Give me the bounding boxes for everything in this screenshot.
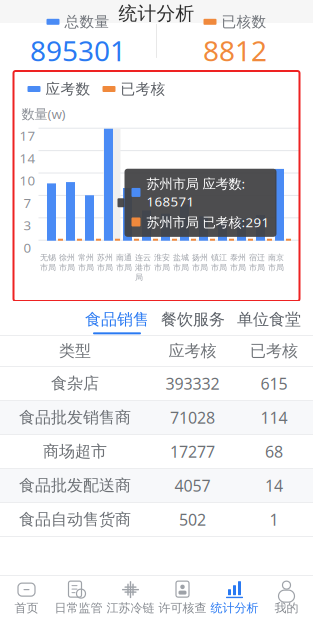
staticText: 商场超市 <box>43 442 107 461</box>
staticText: 苏州市局 已考核:291 <box>146 213 269 231</box>
staticText: 17 <box>19 127 35 144</box>
staticText: 镇江市局 <box>211 253 227 272</box>
staticText: 连云港市局 <box>135 253 151 282</box>
button[interactable]: 食品销售 <box>79 304 155 336</box>
staticText: 4057 <box>174 475 210 496</box>
button[interactable]: 江苏冷链 <box>104 577 156 619</box>
staticText: 8812 <box>203 32 267 69</box>
staticText: 泰州市局 <box>230 253 246 272</box>
staticText: 盐城市局 <box>173 253 189 272</box>
staticText: 114 <box>260 407 287 428</box>
staticText: 7 <box>23 194 31 212</box>
staticText: 常州市局 <box>78 253 94 272</box>
staticText: 393332 <box>165 373 219 394</box>
staticText: 14 <box>265 475 283 496</box>
staticText: 食品自动售货商 <box>19 510 131 529</box>
staticText: 总数量 <box>64 13 109 31</box>
staticText: 502 <box>179 509 206 530</box>
staticText: 淮安市局 <box>154 253 170 272</box>
staticText: 苏州市局 <box>97 253 113 272</box>
staticText: 扬州市局 <box>192 253 208 272</box>
button[interactable]: 我的 <box>260 577 312 619</box>
staticText: 895301 <box>30 32 126 69</box>
staticText: 南京市局 <box>268 253 284 272</box>
staticText: 0 <box>23 239 31 256</box>
staticText: 已考核 <box>120 80 165 98</box>
staticText: 南通市局 <box>116 253 132 272</box>
staticText: 应考数 <box>45 80 90 98</box>
staticText: 1 <box>269 509 278 530</box>
staticText: 徐州市局 <box>59 253 75 272</box>
button[interactable]: 餐饮服务 <box>155 304 231 336</box>
staticText: 食品批发销售商 <box>19 408 131 427</box>
staticText: 我的 <box>274 601 298 615</box>
staticText: 17277 <box>170 441 215 462</box>
staticText: 食品销售 <box>85 310 149 329</box>
staticText: 单位食堂 <box>237 310 301 329</box>
staticText: 已核数 <box>221 13 266 31</box>
staticText: 数量(w) <box>21 105 65 123</box>
staticText: 苏州市局 应考数:168571 <box>146 175 245 210</box>
staticText: 食杂店 <box>51 374 99 393</box>
staticText: 许可核查 <box>158 601 206 615</box>
staticText: 统计分析 <box>118 2 194 25</box>
staticText: 3 <box>23 216 31 234</box>
staticText: 宿迁市局 <box>249 253 265 272</box>
button[interactable]: 单位食堂 <box>231 304 307 336</box>
staticText: 日常监管 <box>54 601 102 615</box>
staticText: 71028 <box>170 407 215 428</box>
staticText: 14 <box>19 149 35 167</box>
button[interactable]: 统计分析 <box>208 577 260 619</box>
staticText: 无锡市局 <box>40 253 56 272</box>
staticText: 68 <box>265 441 283 462</box>
button[interactable]: 日常监管 <box>52 577 104 619</box>
staticText: 应考核 <box>168 341 216 361</box>
button[interactable]: 许可核查 <box>156 577 208 619</box>
button[interactable]: 首页 <box>0 577 52 619</box>
staticText: 10 <box>19 171 35 189</box>
staticText: 餐饮服务 <box>161 310 225 329</box>
staticText: 首页 <box>14 601 38 615</box>
staticText: 食品批发配送商 <box>19 476 131 495</box>
staticText: 已考核 <box>250 341 298 361</box>
staticText: 统计分析 <box>210 601 258 615</box>
staticText: 江苏冷链 <box>106 601 154 615</box>
staticText: 615 <box>260 373 287 394</box>
staticText: 类型 <box>59 341 91 361</box>
